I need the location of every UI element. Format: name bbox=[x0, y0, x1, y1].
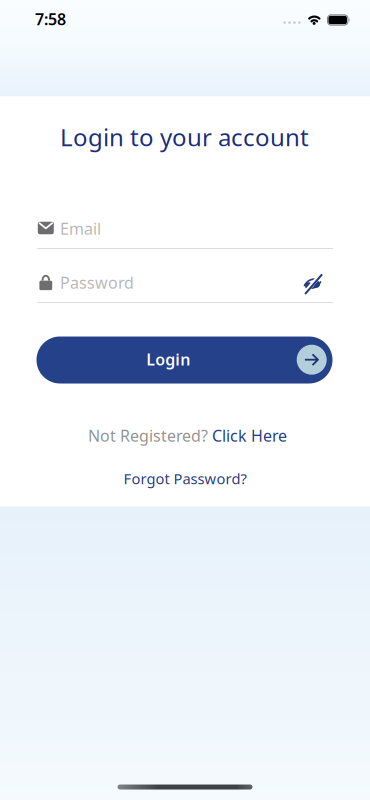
staticText: Forgot Password? bbox=[123, 469, 246, 488]
button[interactable] bbox=[302, 273, 322, 294]
button[interactable]: Forgot Password? bbox=[123, 469, 246, 488]
staticText: Password bbox=[60, 272, 134, 293]
button[interactable]: Click Here bbox=[212, 425, 287, 446]
button[interactable]: Email bbox=[37, 211, 333, 249]
staticText: Email bbox=[60, 218, 101, 239]
staticText: Login to your account bbox=[60, 121, 309, 153]
staticText: Login bbox=[146, 349, 190, 370]
staticText: Not Registered? bbox=[88, 425, 208, 446]
button[interactable]: Login bbox=[36, 336, 332, 383]
staticText: Click Here bbox=[212, 425, 287, 446]
staticText: 7:58 bbox=[35, 8, 66, 30]
button[interactable]: Password bbox=[37, 265, 333, 303]
